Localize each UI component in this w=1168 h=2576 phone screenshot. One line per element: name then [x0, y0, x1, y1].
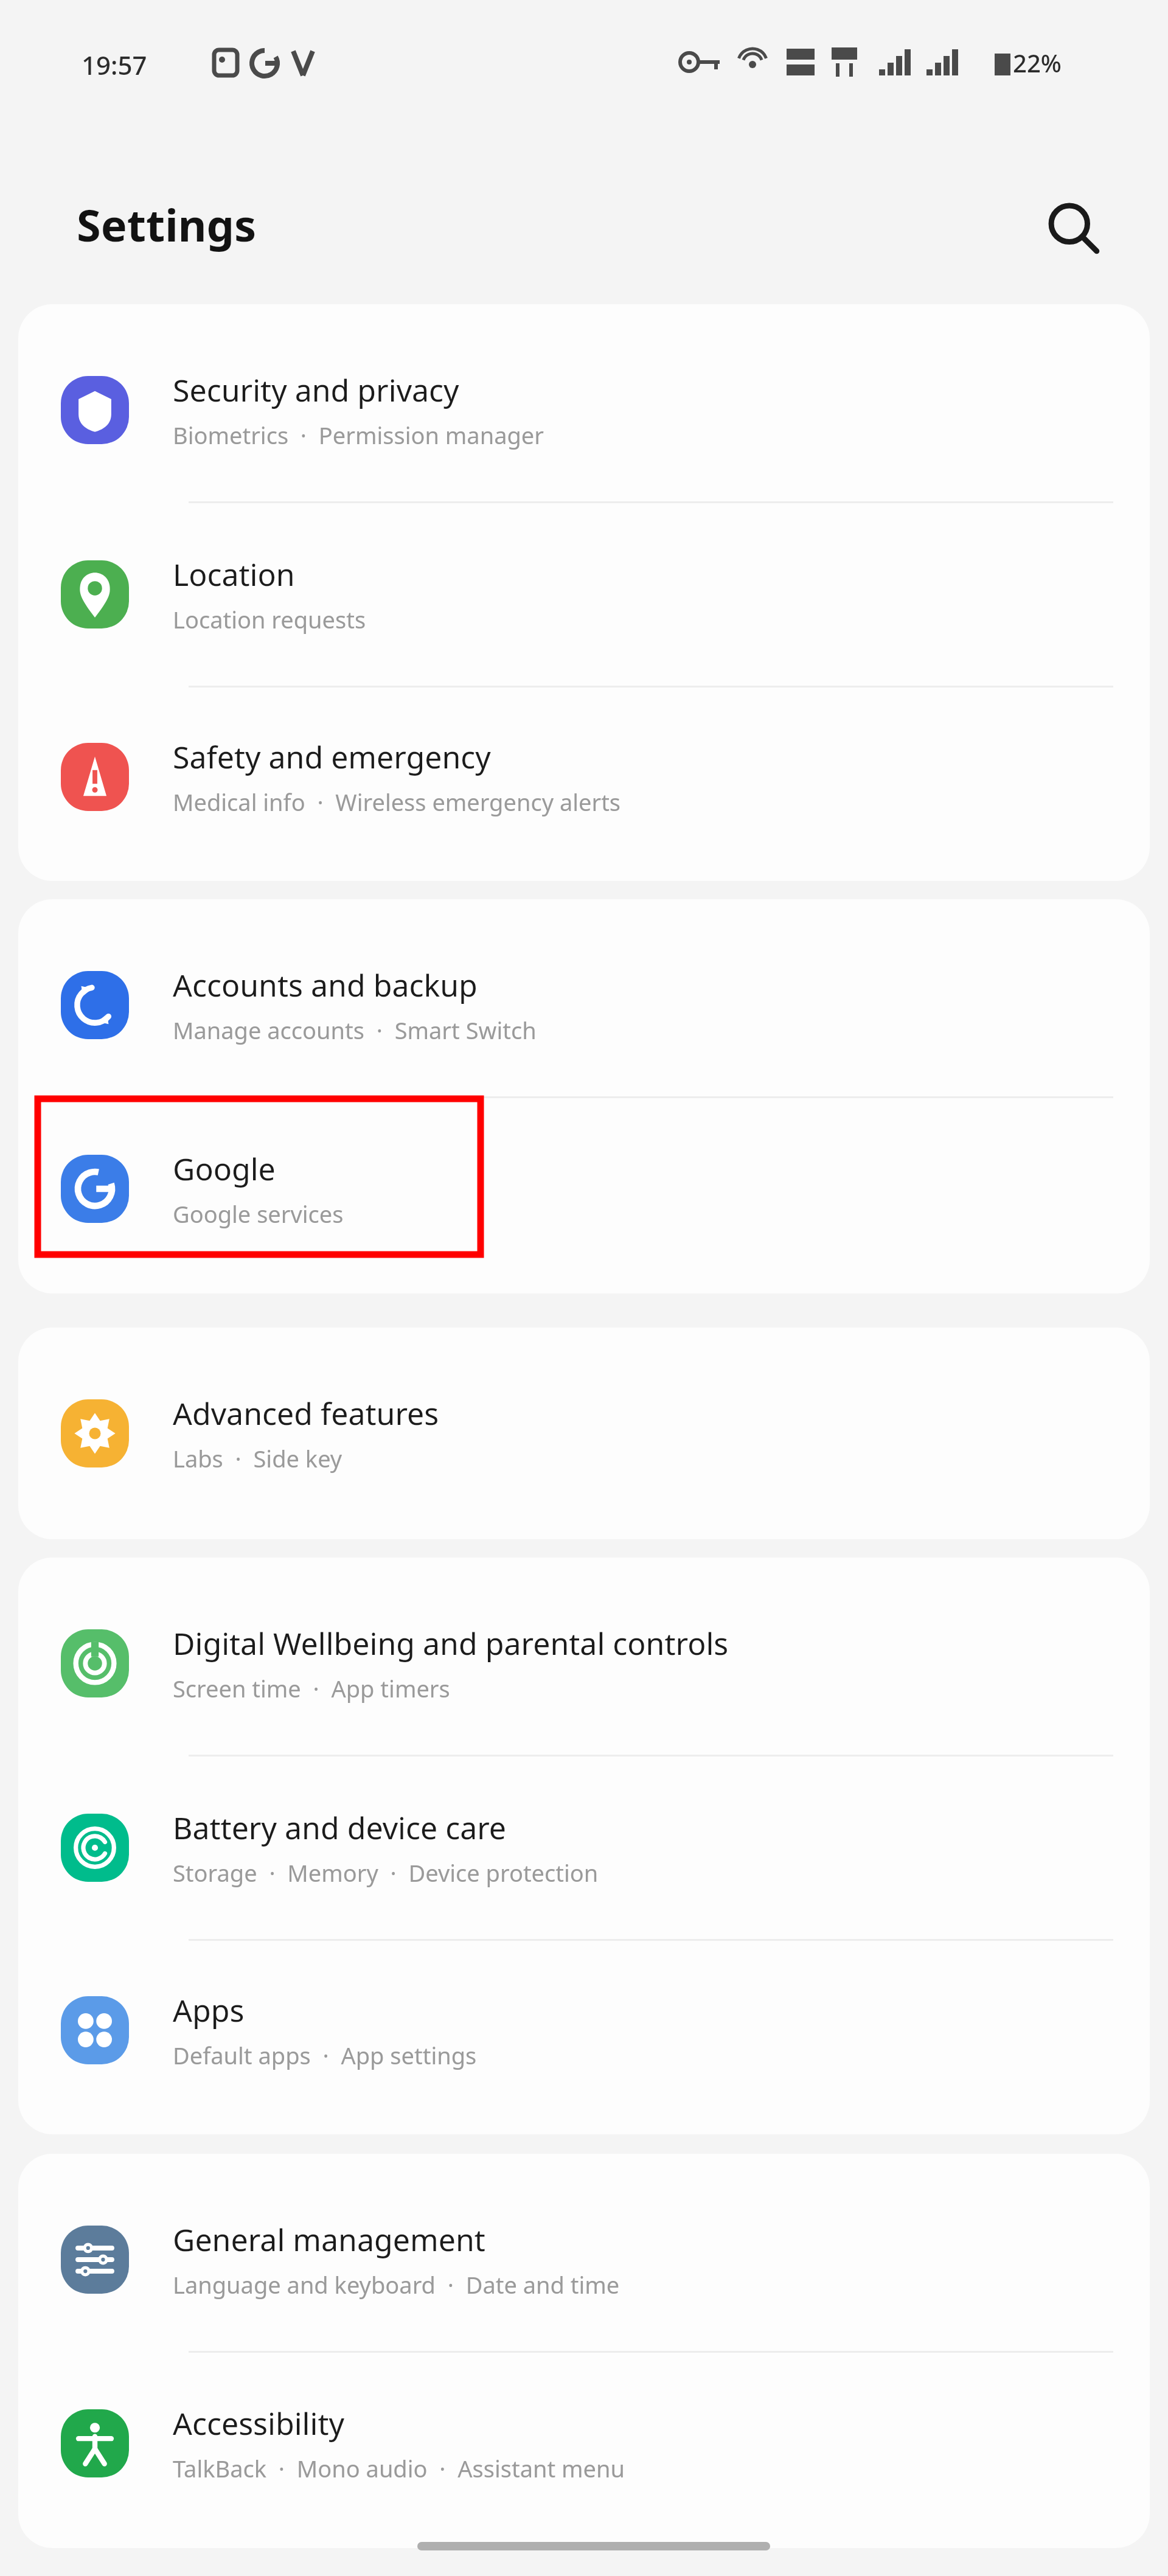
staticText: 19:57 — [82, 47, 147, 82]
staticText: Location requests — [173, 604, 366, 635]
button[interactable]: Battery and device care — [18, 1756, 1150, 1939]
button[interactable]: Advanced features — [18, 1342, 1150, 1525]
button[interactable]: Security and privacy — [18, 319, 1150, 501]
staticText: Safety and emergency — [173, 736, 491, 778]
button[interactable]: General management — [18, 2168, 1150, 2351]
staticText: Accounts and backup — [173, 964, 478, 1006]
staticText: Accessibility — [173, 2403, 344, 2444]
button[interactable]: Location — [18, 503, 1150, 686]
staticText: Screen time · App timers — [173, 1673, 450, 1704]
button[interactable]: Google — [18, 1098, 1150, 1279]
staticText: Location — [173, 554, 295, 595]
button[interactable]: Accessibility — [18, 2353, 1150, 2533]
staticText: 22% — [1013, 46, 1062, 79]
staticText: Biometrics · Permission manager — [173, 419, 544, 451]
staticText: Security and privacy — [173, 369, 459, 411]
staticText: Language and keyboard · Date and time — [173, 2269, 620, 2300]
staticText: Default apps · App settings — [173, 2039, 477, 2071]
staticText: General management — [173, 2219, 485, 2260]
button[interactable]: Apps — [18, 1941, 1150, 2120]
staticText: Digital Wellbeing and parental controls — [173, 1623, 729, 1664]
staticText: Battery and device care — [173, 1807, 507, 1848]
staticText: Labs · Side key — [173, 1443, 342, 1474]
staticText: TalkBack · Mono audio · Assistant menu — [173, 2452, 625, 2484]
staticText: Settings — [77, 195, 257, 254]
staticText: Advanced features — [173, 1393, 439, 1434]
staticText: Google services — [173, 1198, 344, 1230]
staticText: Apps — [173, 1989, 245, 2031]
button[interactable]: Safety and emergency — [18, 688, 1150, 866]
button[interactable]: Digital Wellbeing and parental controls — [18, 1572, 1150, 1755]
button[interactable]: Accounts and backup — [18, 914, 1150, 1096]
staticText: Manage accounts · Smart Switch — [173, 1014, 537, 1046]
staticText: Google — [173, 1148, 276, 1189]
button[interactable]: Search settings — [1028, 183, 1119, 274]
staticText: Storage · Memory · Device protection — [173, 1857, 599, 1888]
staticText: Medical info · Wireless emergency alerts — [173, 786, 621, 818]
